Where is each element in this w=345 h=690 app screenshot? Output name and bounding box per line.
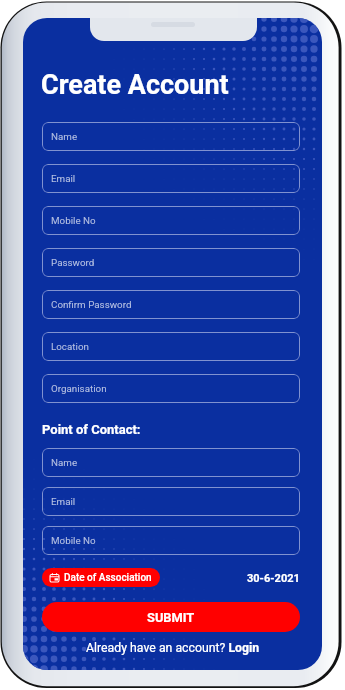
- button[interactable]: Organisation: [42, 374, 300, 403]
- other: Calendar: [50, 573, 59, 582]
- staticText: Email: [51, 173, 76, 184]
- button[interactable]: Name: [42, 448, 300, 477]
- staticText: Date of Association: [64, 572, 152, 584]
- button[interactable]: Location: [42, 332, 300, 361]
- button[interactable]: Name: [42, 122, 300, 151]
- staticText: Name: [51, 131, 78, 142]
- staticText: Password: [51, 257, 95, 268]
- staticText: Mobile No: [51, 535, 96, 546]
- button[interactable]: SUBMIT: [42, 602, 300, 632]
- button[interactable]: Already have an account? Login: [86, 641, 260, 655]
- staticText: Name: [51, 457, 78, 468]
- staticText: Mobile No: [51, 215, 96, 226]
- staticText: Already have an account? Login: [86, 641, 260, 655]
- staticText: Location: [51, 341, 89, 352]
- button[interactable]: Email: [42, 487, 300, 516]
- button[interactable]: Mobile No: [42, 526, 300, 555]
- button[interactable]: Calendar: [42, 568, 160, 587]
- staticText: Organisation: [51, 383, 107, 394]
- button[interactable]: Mobile No: [42, 206, 300, 235]
- staticText: SUBMIT: [147, 610, 195, 625]
- staticText: Email: [51, 496, 76, 507]
- staticText: Point of Contact:: [42, 422, 141, 437]
- staticText: Confirm Password: [51, 299, 132, 310]
- staticText: 30-6-2021: [247, 572, 300, 585]
- button[interactable]: Confirm Password: [42, 290, 300, 319]
- button[interactable]: Password: [42, 248, 300, 277]
- staticText: Create Account: [41, 69, 229, 101]
- button[interactable]: Email: [42, 164, 300, 193]
